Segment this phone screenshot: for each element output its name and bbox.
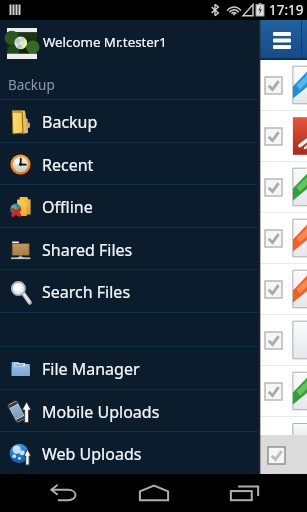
button[interactable]: File Manager bbox=[0, 346, 258, 389]
button[interactable]: Home bbox=[126, 474, 182, 512]
button[interactable] bbox=[0, 315, 307, 365]
staticText: 17:19 bbox=[269, 1, 304, 19]
button[interactable] bbox=[0, 435, 307, 475]
button[interactable]: Mobile Uploads bbox=[0, 389, 258, 432]
button[interactable] bbox=[0, 162, 307, 212]
button[interactable]: Backup bbox=[0, 99, 258, 142]
button[interactable]: Back bbox=[36, 474, 92, 512]
button[interactable]: Recent bbox=[0, 142, 258, 185]
button[interactable]: Open navigation drawer bbox=[262, 20, 301, 60]
staticText: Backup bbox=[42, 111, 98, 133]
staticText: Mobile Uploads bbox=[42, 401, 160, 423]
button[interactable]: Welcome Mr.tester1 bbox=[0, 21, 258, 63]
button[interactable] bbox=[0, 60, 307, 110]
staticText: Welcome Mr.tester1 bbox=[43, 33, 167, 51]
button[interactable] bbox=[0, 366, 307, 416]
button[interactable]: Search Files bbox=[0, 269, 258, 312]
button[interactable]: Recents bbox=[216, 474, 272, 512]
button[interactable] bbox=[0, 417, 307, 435]
staticText: File Manager bbox=[42, 358, 140, 380]
button[interactable]: Shared Files bbox=[0, 227, 258, 270]
staticText: Search Files bbox=[42, 281, 131, 303]
button[interactable] bbox=[0, 111, 307, 161]
staticText: Shared Files bbox=[42, 239, 133, 261]
button[interactable] bbox=[0, 213, 307, 263]
staticText: Web Uploads bbox=[42, 443, 142, 465]
staticText: Offline bbox=[42, 196, 93, 218]
button[interactable]: Offline bbox=[0, 184, 258, 227]
staticText: Recent bbox=[42, 154, 94, 176]
button[interactable] bbox=[0, 264, 307, 314]
staticText: Backup bbox=[8, 76, 55, 94]
button[interactable]: Web Uploads bbox=[0, 431, 258, 474]
